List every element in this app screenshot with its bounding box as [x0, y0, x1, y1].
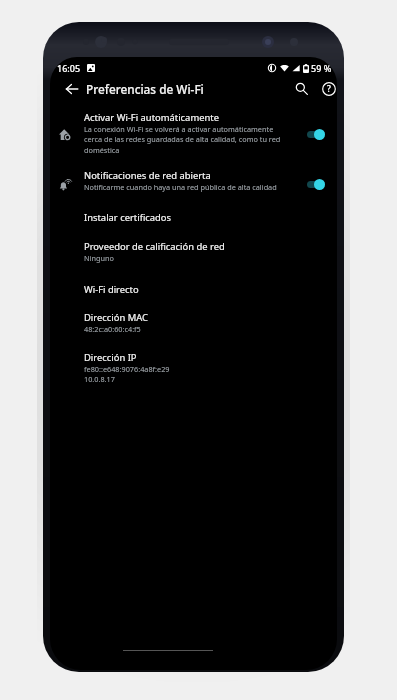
staticText: ?: [327, 83, 331, 95]
staticText: Dirección IP: [84, 351, 137, 364]
staticText: 48:2c:a0:60:c4:f5: [84, 324, 141, 334]
staticText: Activar Wi-Fi automáticamente: [84, 111, 219, 124]
staticText: fe80::e648:9076:4a8f:e29 10.0.8.17: [84, 364, 170, 384]
button[interactable]: Search: [287, 74, 316, 103]
staticText: Notificarme cuando haya una red pública …: [84, 182, 277, 192]
button[interactable]: Instalar certificados: [50, 211, 337, 224]
staticText: 16:05: [57, 62, 81, 74]
button[interactable]: Dirección MAC: [50, 311, 337, 334]
staticText: La conexión Wi-Fi se volverá a activar a…: [84, 124, 289, 155]
staticText: Dirección MAC: [84, 311, 148, 324]
button[interactable]: Toggle Wi-Fi option: [301, 174, 333, 194]
button[interactable]: Wi-Fi directo: [50, 283, 337, 296]
button[interactable]: Proveedor de calificación de red: [50, 240, 337, 263]
button[interactable]: Activar Wi-Fi automáticamente: [50, 111, 337, 155]
staticText: Wi-Fi directo: [84, 283, 139, 296]
staticText: 59 %: [311, 62, 332, 74]
button[interactable]: Dirección IP: [50, 351, 337, 384]
staticText: Proveedor de calificación de red: [84, 240, 225, 253]
staticText: Preferencias de Wi-Fi: [86, 81, 204, 97]
button[interactable]: Notificaciones de red abierta: [50, 169, 337, 192]
staticText: Instalar certificados: [84, 211, 172, 224]
button[interactable]: Back: [57, 74, 86, 103]
button[interactable]: Help: [314, 74, 337, 103]
staticText: Ninguno: [84, 253, 114, 263]
staticText: Notificaciones de red abierta: [84, 169, 211, 182]
button[interactable]: Toggle Wi-Fi option: [301, 124, 333, 144]
